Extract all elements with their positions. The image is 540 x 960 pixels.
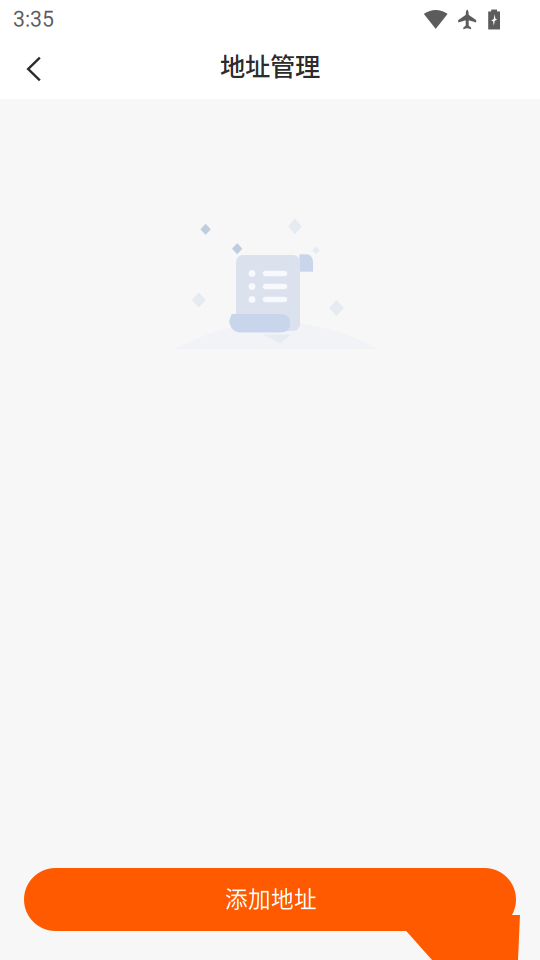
button[interactable]: Back bbox=[0, 45, 58, 93]
staticText: 3:35 bbox=[13, 7, 54, 32]
button[interactable]: 添加地址 bbox=[24, 868, 516, 931]
staticText: 地址管理 bbox=[220, 47, 320, 83]
staticText: 添加地址 bbox=[225, 881, 317, 914]
